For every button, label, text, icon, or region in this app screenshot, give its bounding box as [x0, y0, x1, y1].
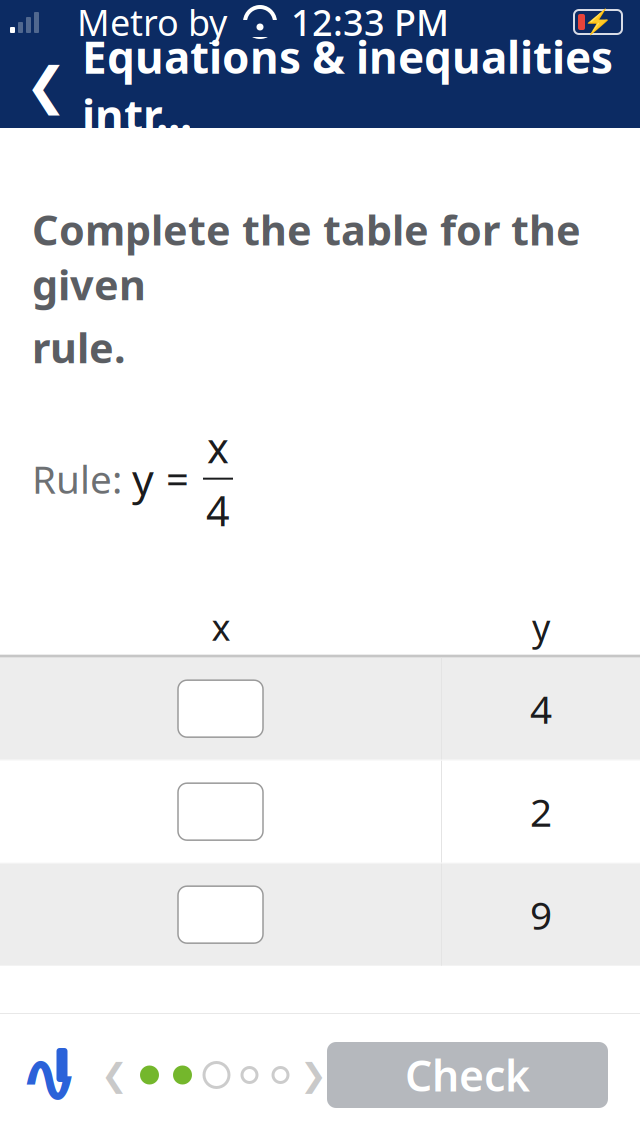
button[interactable]: Answer input for 4 — [178, 680, 263, 737]
staticText: x — [211, 603, 230, 651]
staticText: 4 — [206, 483, 230, 538]
staticText: x — [207, 420, 229, 475]
staticText: rule. — [32, 320, 126, 375]
staticText: Check — [405, 1047, 530, 1103]
staticText: = — [166, 452, 189, 505]
staticText: 4 — [530, 683, 552, 734]
button[interactable]: Drawing tools — [11, 1035, 87, 1115]
staticText: y — [532, 603, 550, 651]
button[interactable]: Answer input for 2 — [178, 783, 263, 840]
staticText: 12:33 PM — [291, 0, 449, 46]
button[interactable]: Answer input for 9 — [178, 886, 263, 943]
staticText: Rule: — [32, 453, 122, 504]
staticText: y — [132, 450, 154, 507]
staticText: ❯ — [300, 1057, 327, 1093]
staticText: ❮ — [25, 57, 67, 115]
staticText: Metro by — [77, 0, 227, 46]
button[interactable]: Back — [10, 44, 82, 128]
staticText: 9 — [530, 889, 552, 940]
staticText: ⚡ — [583, 8, 613, 36]
staticText: 2 — [530, 786, 552, 837]
staticText: Complete the table for the given — [32, 202, 581, 312]
button[interactable]: Check — [327, 1042, 608, 1108]
staticText: ∿ — [19, 1037, 79, 1119]
staticText: Equations & inequalities intr... — [82, 28, 613, 144]
staticText: ❮ — [101, 1057, 128, 1093]
